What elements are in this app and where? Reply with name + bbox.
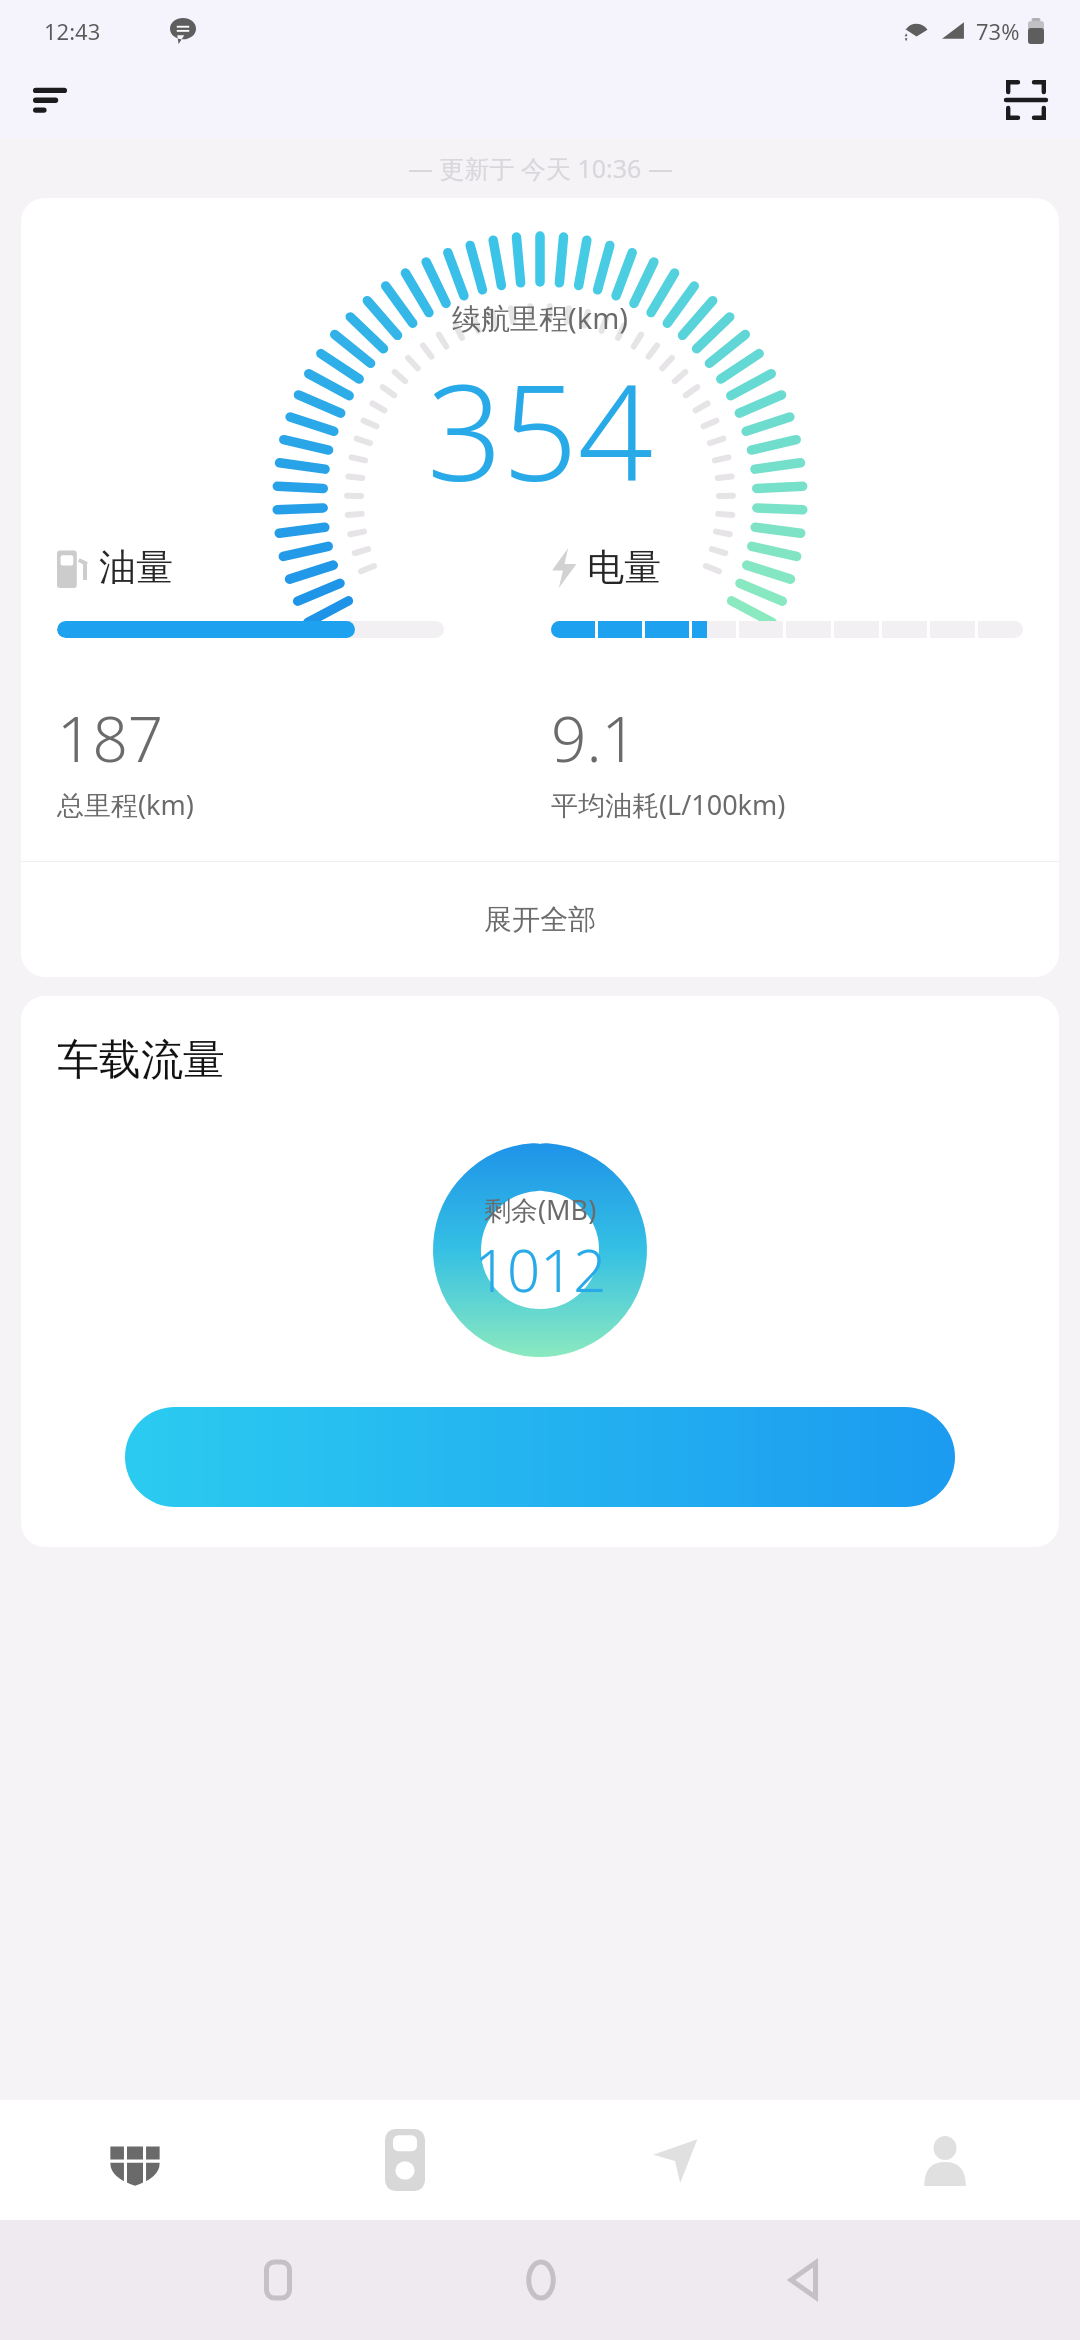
button[interactable]: Back <box>672 2220 935 2340</box>
button[interactable]: Remote <box>270 2100 540 2220</box>
staticText: 车载流量 <box>57 1034 225 1087</box>
staticText: 续航里程(km) <box>452 298 629 338</box>
staticText: 总里程(km) <box>57 786 194 823</box>
staticText: 展开全部 <box>484 902 596 937</box>
staticText: 12:43 <box>44 16 101 46</box>
button[interactable]: Recents <box>146 2220 409 2340</box>
staticText: — 更新于 今天 10:36 — <box>408 151 673 185</box>
button[interactable]: Navigate <box>540 2100 810 2220</box>
button[interactable]: Vehicle <box>0 2100 270 2220</box>
staticText: 1012 <box>474 1230 607 1309</box>
staticText: 平均油耗(L/100km) <box>551 786 786 823</box>
staticText: 354 <box>427 340 654 518</box>
staticText: 油量 <box>99 544 173 591</box>
button[interactable]: Scan <box>994 68 1058 132</box>
staticText: 187 <box>57 696 164 780</box>
button[interactable]: 展开全部 <box>21 862 1059 977</box>
staticText: 剩余(MB) <box>484 1191 597 1228</box>
button[interactable]: Menu <box>20 70 80 130</box>
staticText: 9.1 <box>551 696 637 780</box>
button[interactable]: Profile <box>810 2100 1080 2220</box>
staticText: 73% <box>976 16 1020 46</box>
button[interactable]: Home <box>409 2220 672 2340</box>
button[interactable] <box>125 1407 955 1507</box>
staticText: 电量 <box>587 544 661 591</box>
